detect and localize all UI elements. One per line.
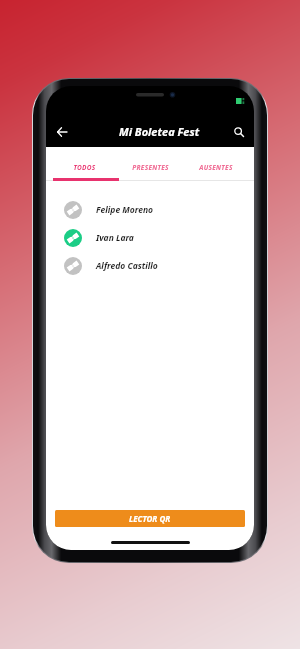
button[interactable]: PRESENTES	[117, 153, 183, 182]
staticText: AUSENTES	[199, 163, 233, 172]
staticText: TODOS	[73, 163, 96, 172]
button[interactable]: Back	[51, 121, 73, 143]
button[interactable]: LECTOR QR	[55, 510, 245, 527]
button[interactable]: TODOS	[51, 153, 117, 182]
staticText: Mi Boletea Fest	[119, 124, 200, 139]
button[interactable]: Ivan Lara	[46, 224, 254, 252]
staticText: Ivan Lara	[96, 232, 134, 244]
staticText: Alfredo Castillo	[96, 260, 158, 272]
button[interactable]: AUSENTES	[183, 153, 249, 182]
button[interactable]: Alfredo Castillo	[46, 252, 254, 280]
staticText: Felipe Moreno	[96, 204, 154, 216]
button[interactable]: Search	[228, 121, 250, 143]
button[interactable]: Felipe Moreno	[46, 196, 254, 224]
staticText: PRESENTES	[132, 163, 169, 172]
staticText: LECTOR QR	[129, 513, 171, 524]
